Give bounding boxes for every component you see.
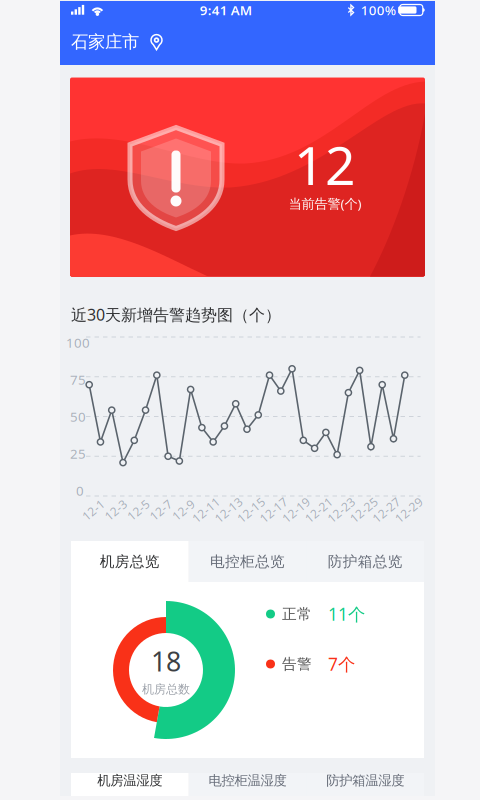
staticText: 12-13 xyxy=(212,502,244,518)
staticText: 12-1 xyxy=(81,502,106,518)
staticText: 正常 xyxy=(282,605,312,623)
staticText: 防护箱总览 xyxy=(328,552,403,570)
button[interactable]: 电控柜总览 xyxy=(189,541,306,582)
staticText: 12-29 xyxy=(393,502,425,518)
staticText: 机房总数 xyxy=(142,682,190,696)
staticText: 12-17 xyxy=(258,502,290,518)
staticText: 12-19 xyxy=(280,502,312,518)
staticText: 近30天新增告警趋势图（个） xyxy=(71,304,281,325)
staticText: 机房温湿度 xyxy=(97,772,162,789)
staticText: 当前告警(个) xyxy=(288,195,361,212)
staticText: 12-15 xyxy=(235,502,267,518)
staticText: 电控柜总览 xyxy=(210,552,285,570)
staticText: 25 xyxy=(70,445,86,462)
staticText: 12 xyxy=(294,129,356,200)
staticText: 11个 xyxy=(328,602,365,625)
staticText: 石家庄市 xyxy=(71,31,139,53)
staticText: 12-11 xyxy=(190,502,222,518)
staticText: 7个 xyxy=(328,652,355,675)
staticText: 12-21 xyxy=(303,502,335,518)
staticText: 100 xyxy=(66,334,90,351)
button[interactable]: 防护箱温湿度 xyxy=(306,760,424,800)
staticText: 0 xyxy=(76,482,84,499)
staticText: 50 xyxy=(70,408,86,425)
staticText: 电控柜温湿度 xyxy=(208,772,286,789)
button[interactable]: 防护箱总览 xyxy=(306,541,424,582)
staticText: 9:41 AM xyxy=(200,1,252,19)
staticText: 防护箱温湿度 xyxy=(326,772,404,789)
staticText: 100% xyxy=(361,1,396,19)
button[interactable]: 电控柜温湿度 xyxy=(189,760,306,800)
staticText: 12-23 xyxy=(325,502,357,518)
staticText: 告警 xyxy=(282,655,312,673)
button[interactable]: 机房总览 xyxy=(71,541,189,582)
staticText: 12-5 xyxy=(126,502,151,518)
button[interactable]: 石家庄市 xyxy=(60,22,174,62)
button[interactable]: 机房温湿度 xyxy=(71,760,189,800)
staticText: 机房总览 xyxy=(100,552,160,570)
staticText: 12-27 xyxy=(370,502,402,518)
staticText: 12-25 xyxy=(348,502,380,518)
staticText: 75 xyxy=(70,371,86,388)
staticText: 12-7 xyxy=(148,502,173,518)
staticText: 12-9 xyxy=(171,502,196,518)
staticText: 12-3 xyxy=(103,502,128,518)
staticText: 18 xyxy=(151,643,181,679)
